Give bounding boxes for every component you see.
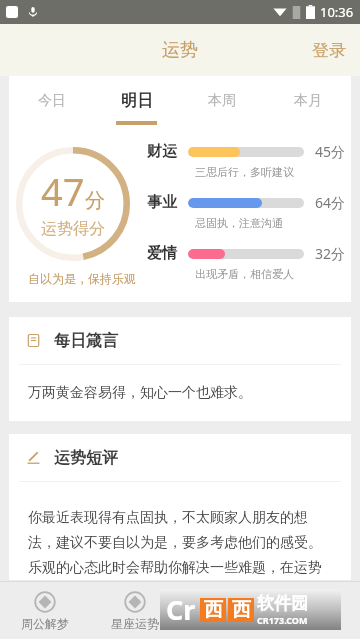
staticText: 出现矛盾，相信爱人 xyxy=(195,267,294,281)
staticText: 财运 xyxy=(147,142,188,161)
staticText: 本周 xyxy=(208,92,236,110)
staticText: 10:36 xyxy=(320,3,354,21)
staticText: 你最近表现得有点固执，不太顾家人朋友的想法，建议不要自以为是，要多考虑他们的感受… xyxy=(28,509,332,576)
staticText: 星座运势 xyxy=(111,616,159,631)
staticText: 西 xyxy=(232,598,251,622)
staticText: 周公解梦 xyxy=(21,616,69,631)
staticText: 西 xyxy=(204,598,223,622)
staticText: 分 xyxy=(85,188,105,213)
button[interactable]: 明日 xyxy=(94,76,179,125)
staticText: 每日箴言 xyxy=(54,331,118,351)
staticText: 64分 xyxy=(315,193,346,212)
staticText: 自以为是，保持乐观 xyxy=(28,271,136,286)
staticText: 三思后行，多听建议 xyxy=(195,165,294,179)
staticText: 45分 xyxy=(315,142,346,161)
staticText: 32分 xyxy=(315,244,346,263)
staticText: 47 xyxy=(41,165,85,217)
staticText: 我的 xyxy=(303,616,327,631)
staticText: 本月 xyxy=(294,92,322,110)
staticText: 明日 xyxy=(121,91,153,111)
staticText: 黄历 xyxy=(213,616,237,631)
staticText: Cr xyxy=(166,591,196,628)
button[interactable]: 黄历 xyxy=(180,582,270,639)
button[interactable]: 本月 xyxy=(265,76,351,125)
staticText: 万两黄金容易得，知心一个也难求。 xyxy=(28,384,252,402)
staticText: 忌固执，注意沟通 xyxy=(195,216,283,230)
staticText: 事业 xyxy=(147,193,188,212)
staticText: 今日 xyxy=(38,92,66,110)
staticText: 运势得分 xyxy=(41,219,105,239)
staticText: 运势短评 xyxy=(54,448,118,468)
button[interactable]: 登录 xyxy=(298,32,360,69)
staticText: 爱情 xyxy=(147,244,188,263)
button[interactable]: 本周 xyxy=(179,76,265,125)
button[interactable]: 周公解梦 xyxy=(0,582,90,639)
button[interactable]: 运势 xyxy=(154,31,206,70)
staticText: CR173.COM xyxy=(257,614,308,626)
button[interactable]: 今日 xyxy=(9,76,94,125)
staticText: 软件园 xyxy=(257,593,308,614)
button[interactable]: 星座运势 xyxy=(90,582,180,639)
button[interactable]: 我的 xyxy=(270,582,360,639)
